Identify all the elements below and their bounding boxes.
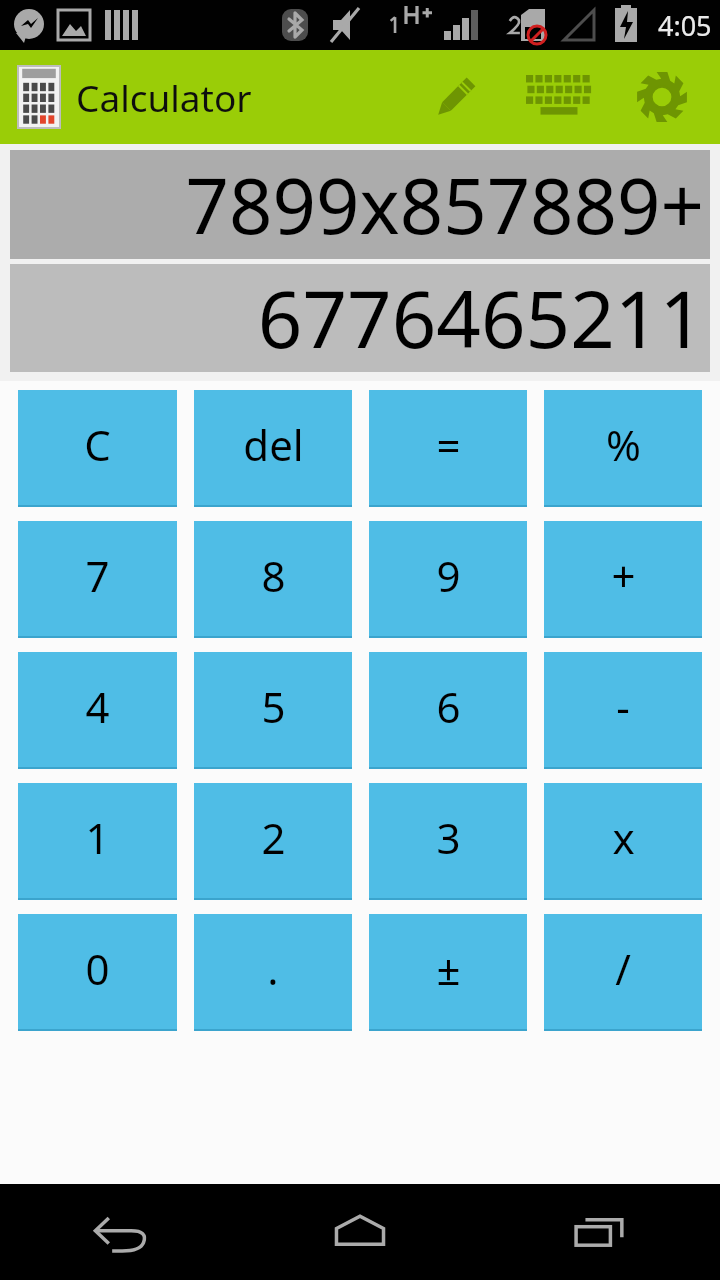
staticText: 6776465211: [257, 265, 704, 371]
staticText: 4:05: [658, 7, 712, 44]
staticText: 2: [261, 809, 286, 866]
staticText: x: [612, 809, 635, 866]
button[interactable]: ±: [369, 914, 527, 1031]
button[interactable]: 1: [18, 783, 177, 900]
button[interactable]: /: [544, 914, 702, 1031]
button[interactable]: 5: [194, 652, 352, 769]
staticText: 0: [85, 940, 110, 997]
button[interactable]: %: [544, 390, 702, 507]
button[interactable]: Recents: [480, 1184, 720, 1280]
button[interactable]: Settings: [614, 50, 710, 144]
staticText: =: [436, 416, 461, 473]
button[interactable]: 3: [369, 783, 527, 900]
staticText: 7: [85, 547, 110, 604]
staticText: del: [243, 416, 304, 473]
button[interactable]: Keyboard: [504, 50, 614, 144]
staticText: 3: [436, 809, 461, 866]
button[interactable]: del: [194, 390, 352, 507]
staticText: -: [616, 678, 630, 735]
staticText: 9: [436, 547, 461, 604]
button[interactable]: -: [544, 652, 702, 769]
staticText: .: [267, 940, 279, 997]
staticText: 4: [85, 678, 110, 735]
button[interactable]: 6: [369, 652, 527, 769]
staticText: 5: [261, 678, 286, 735]
button[interactable]: 0: [18, 914, 177, 1031]
staticText: 8: [261, 547, 286, 604]
button[interactable]: .: [194, 914, 352, 1031]
staticText: 6: [436, 678, 461, 735]
button[interactable]: 4: [18, 652, 177, 769]
staticText: ±: [436, 940, 461, 997]
button[interactable]: 7: [18, 521, 177, 638]
button[interactable]: 9: [369, 521, 527, 638]
button[interactable]: 8: [194, 521, 352, 638]
button[interactable]: Edit: [408, 50, 504, 144]
button[interactable]: Back: [0, 1184, 240, 1280]
staticText: Calculator: [76, 72, 252, 122]
button[interactable]: 2: [194, 783, 352, 900]
button[interactable]: x: [544, 783, 702, 900]
staticText: 1: [85, 809, 110, 866]
button[interactable]: C: [18, 390, 177, 507]
staticText: +: [611, 547, 636, 604]
staticText: C: [84, 416, 111, 473]
staticText: %: [606, 416, 641, 473]
staticText: /: [615, 940, 631, 997]
button[interactable]: Home: [240, 1184, 480, 1280]
staticText: 7899x857889+: [185, 153, 704, 257]
button[interactable]: =: [369, 390, 527, 507]
button[interactable]: +: [544, 521, 702, 638]
